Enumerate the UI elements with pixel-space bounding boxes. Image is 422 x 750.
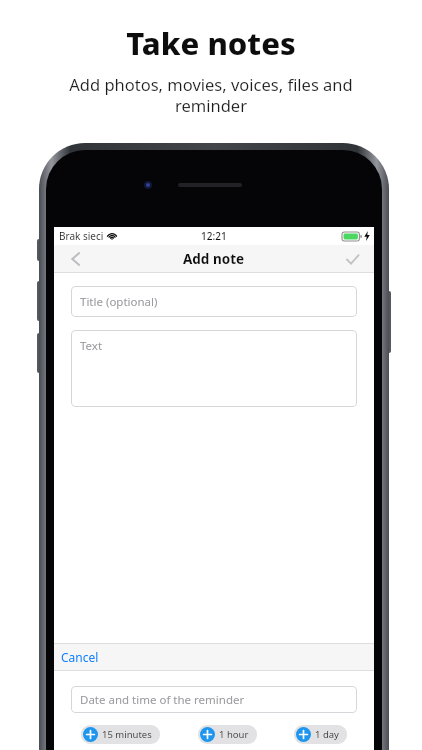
staticText: Date and time of the reminder xyxy=(80,692,245,708)
staticText: Cancel xyxy=(61,649,99,665)
staticText: 12:21 xyxy=(201,229,227,243)
button[interactable]: 1 day xyxy=(294,725,347,744)
button[interactable]: Save note xyxy=(330,245,374,273)
staticText: 1 day xyxy=(315,728,339,741)
staticText: 1 hour xyxy=(219,728,249,741)
button[interactable]: 15 minutes xyxy=(81,725,160,744)
staticText: Title (optional) xyxy=(80,294,158,310)
button[interactable]: Back xyxy=(54,245,98,273)
button[interactable]: 1 hour xyxy=(198,725,257,744)
staticText: Add photos, movies, voices, files and re… xyxy=(36,73,386,117)
button[interactable]: Text xyxy=(71,330,357,407)
button[interactable]: Cancel xyxy=(54,643,106,671)
button[interactable]: Title (optional) xyxy=(71,286,357,317)
staticText: Add note xyxy=(183,250,245,268)
staticText: Brak sieci xyxy=(59,229,104,243)
staticText: 15 minutes xyxy=(102,728,152,741)
staticText: Take notes xyxy=(126,22,296,64)
button[interactable]: Date and time of the reminder xyxy=(71,686,357,713)
staticText: Text xyxy=(80,338,103,354)
